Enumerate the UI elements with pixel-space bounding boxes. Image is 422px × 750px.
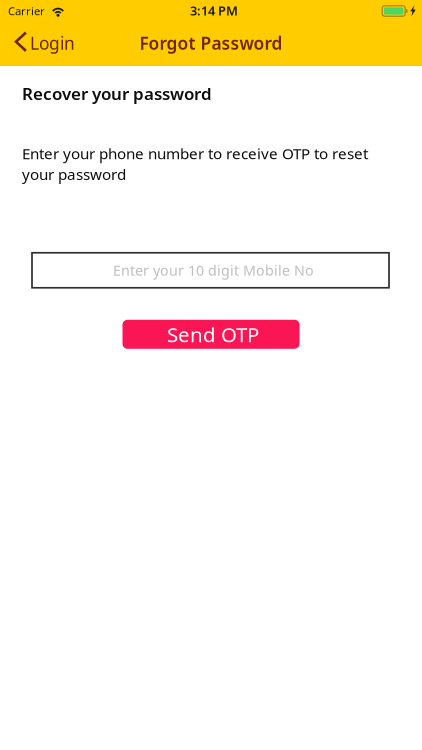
staticText: Send OTP [167,320,259,348]
button[interactable]: Login [0,22,85,62]
button[interactable]: Send OTP [122,320,299,349]
staticText: Recover your password [22,82,212,105]
staticText: Enter your 10 digit Mobile No [113,261,314,280]
staticText: Forgot Password [139,31,282,55]
staticText: Carrier [8,3,45,19]
staticText: 3:14 PM [190,2,238,19]
staticText: Login [30,31,75,55]
staticText: Enter your phone number to receive OTP t… [22,143,368,184]
